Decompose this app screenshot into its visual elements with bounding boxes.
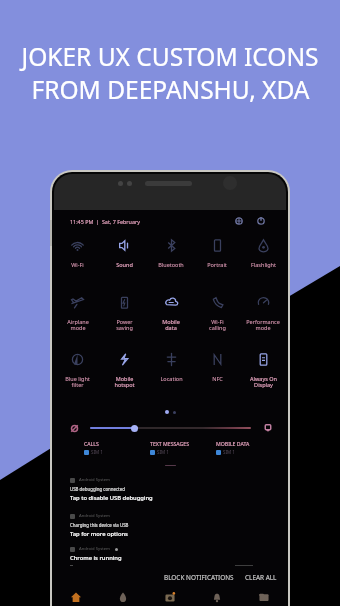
- button[interactable]: Location: [148, 350, 194, 407]
- staticText: Wi-Fi: [71, 261, 84, 268]
- staticText: Flashlight: [251, 261, 276, 268]
- staticText: Tap for more options: [70, 530, 128, 538]
- staticText: Mobile data: [162, 318, 180, 332]
- staticText: Android System: [79, 513, 110, 519]
- button[interactable]: BLOCK NOTIFICATIONS: [162, 571, 236, 584]
- button[interactable]: Flashlight: [240, 236, 286, 293]
- staticText: FROM DEEPANSHU, XDA: [31, 73, 310, 106]
- button[interactable]: Weather: [117, 591, 129, 603]
- button[interactable]: Airplane mode: [54, 293, 101, 350]
- button[interactable]: Power: [257, 217, 265, 225]
- staticText: Wi-Fi calling: [209, 318, 226, 332]
- button[interactable]: Settings: [235, 217, 243, 225]
- staticText: Tap to disable USB debugging: [70, 494, 153, 502]
- staticText: SIM 1: [91, 449, 103, 455]
- button[interactable]: CLEAR ALL: [243, 571, 279, 584]
- staticText: Airplane mode: [67, 318, 89, 332]
- button[interactable]: Wi-Fi calling: [194, 293, 240, 350]
- button[interactable]: Blue light filter: [54, 350, 101, 407]
- staticText: 11:45 PM | Sat, 7 February: [70, 218, 140, 225]
- button[interactable]: Android System: [54, 477, 286, 502]
- staticText: Location: [160, 375, 183, 382]
- staticText: Mobile hotspot: [114, 375, 135, 389]
- staticText: NFC: [212, 375, 223, 382]
- staticText: Android System: [79, 477, 110, 483]
- staticText: TEXT MESSAGES: [150, 440, 190, 447]
- staticText: SIM 1: [223, 449, 235, 455]
- button[interactable]: Auto brightness: [70, 424, 79, 433]
- staticText: JOKER UX CUSTOM ICONS: [21, 40, 319, 73]
- staticText: BLOCK NOTIFICATIONS: [164, 573, 234, 582]
- button[interactable]: Alarm: [211, 591, 223, 603]
- button[interactable]: Files: [258, 591, 270, 603]
- button[interactable]: Wi-Fi: [54, 236, 101, 293]
- staticText: USB debugging connected: [70, 486, 125, 492]
- button[interactable]: Mobile hotspot: [101, 350, 148, 407]
- button[interactable]: Mobile data: [148, 293, 194, 350]
- button[interactable]: NFC: [194, 350, 240, 407]
- staticText: Chrome is running: [70, 554, 122, 562]
- staticText: Android System: [79, 546, 110, 552]
- staticText: MOBILE DATA: [216, 440, 250, 447]
- staticText: Power saving: [116, 318, 133, 332]
- staticText: CALLS: [84, 440, 99, 447]
- staticText: Bluetooth: [158, 261, 184, 268]
- button[interactable]: Bluetooth: [148, 236, 194, 293]
- staticText: SIM 1: [157, 449, 169, 455]
- staticText: Charging this device via USB: [70, 522, 129, 528]
- button[interactable]: Performance mode: [240, 293, 286, 350]
- staticText: CLEAR ALL: [245, 573, 277, 582]
- button[interactable]: Power saving: [101, 293, 148, 350]
- staticText: Performance mode: [246, 318, 280, 332]
- button[interactable]: Android System: [54, 513, 286, 538]
- button[interactable]: Camera: [164, 591, 176, 603]
- staticText: Always On Display: [250, 375, 277, 389]
- button[interactable]: Home: [70, 591, 82, 603]
- staticText: Blue light filter: [65, 375, 90, 389]
- button[interactable]: Portrait: [194, 236, 240, 293]
- button[interactable]: Brightness settings: [264, 424, 272, 432]
- staticText: Portrait: [207, 261, 227, 268]
- button[interactable]: Always On Display: [240, 350, 286, 407]
- staticText: Sound: [116, 261, 133, 268]
- button[interactable]: Sound: [101, 236, 148, 293]
